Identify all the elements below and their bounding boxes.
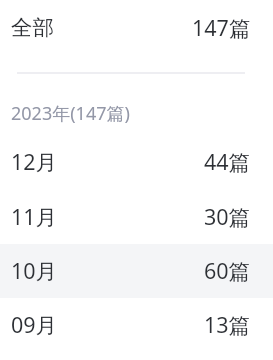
button[interactable]: 09月 [0,298,273,352]
staticText: 44篇 [204,147,251,176]
staticText: 30篇 [204,202,251,231]
staticText: 10月 [11,256,58,285]
staticText: 12月 [11,147,58,176]
staticText: 11月 [11,202,58,231]
button[interactable]: 11月 [0,190,273,244]
staticText: 2023年(147篇) [11,101,130,126]
staticText: 13篇 [204,310,251,339]
staticText: 09月 [11,310,58,339]
button[interactable]: 10月 [0,244,273,298]
staticText: 60篇 [204,256,251,285]
staticText: 147篇 [192,13,251,42]
staticText: 全部 [11,14,54,41]
button[interactable]: 全部 [0,1,273,55]
button[interactable]: 12月 [0,135,273,189]
